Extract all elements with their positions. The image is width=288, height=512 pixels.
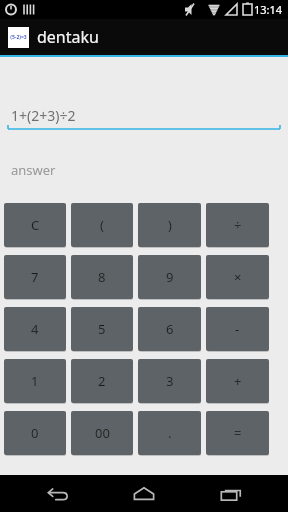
staticText: 1	[31, 372, 39, 390]
staticText: 1+(2+3)÷2	[11, 106, 76, 125]
staticText: +	[234, 372, 242, 390]
button[interactable]: -	[206, 307, 269, 351]
button[interactable]: 6	[138, 307, 201, 351]
button[interactable]: C	[4, 203, 66, 247]
button[interactable]: 2	[71, 359, 133, 403]
button[interactable]: 4	[4, 307, 66, 351]
button[interactable]: ÷	[206, 203, 269, 247]
staticText: .	[168, 424, 172, 442]
button[interactable]: 3	[138, 359, 201, 403]
button[interactable]: =	[206, 411, 269, 455]
staticText: =	[234, 424, 242, 442]
staticText: 8	[98, 268, 106, 286]
staticText: 00	[95, 424, 110, 442]
staticText: -	[235, 320, 240, 338]
staticText: ×	[234, 268, 242, 286]
button[interactable]: Back	[29, 475, 87, 512]
staticText: 3	[166, 372, 174, 390]
button[interactable]: 1	[4, 359, 66, 403]
staticText: 5	[98, 320, 106, 338]
button[interactable]: Home	[115, 475, 173, 512]
button[interactable]: )	[138, 203, 201, 247]
button[interactable]: 7	[4, 255, 66, 299]
button[interactable]: +	[206, 359, 269, 403]
staticText: 13:14	[254, 2, 283, 17]
button[interactable]: 0	[4, 411, 66, 455]
staticText: 0	[31, 424, 39, 442]
staticText: (	[100, 216, 104, 234]
button[interactable]: Recent apps	[202, 475, 260, 512]
staticText: )	[168, 216, 172, 234]
staticText: ÷	[234, 216, 242, 234]
button[interactable]: (	[71, 203, 133, 247]
staticText: 6	[166, 320, 174, 338]
button[interactable]: 00	[71, 411, 133, 455]
button[interactable]: ×	[206, 255, 269, 299]
staticText: (5-2)=3	[10, 34, 27, 41]
staticText: 9	[166, 268, 174, 286]
button[interactable]: 1+(2+3)÷2	[0, 101, 288, 131]
staticText: 4	[31, 320, 39, 338]
staticText: 7	[31, 268, 39, 286]
staticText: answer	[11, 161, 56, 179]
staticText: 2	[98, 372, 106, 390]
button[interactable]: 5	[71, 307, 133, 351]
button[interactable]: .	[138, 411, 201, 455]
button[interactable]: 8	[71, 255, 133, 299]
button[interactable]: 9	[138, 255, 201, 299]
staticText: dentaku	[37, 26, 99, 48]
staticText: C	[31, 216, 40, 234]
